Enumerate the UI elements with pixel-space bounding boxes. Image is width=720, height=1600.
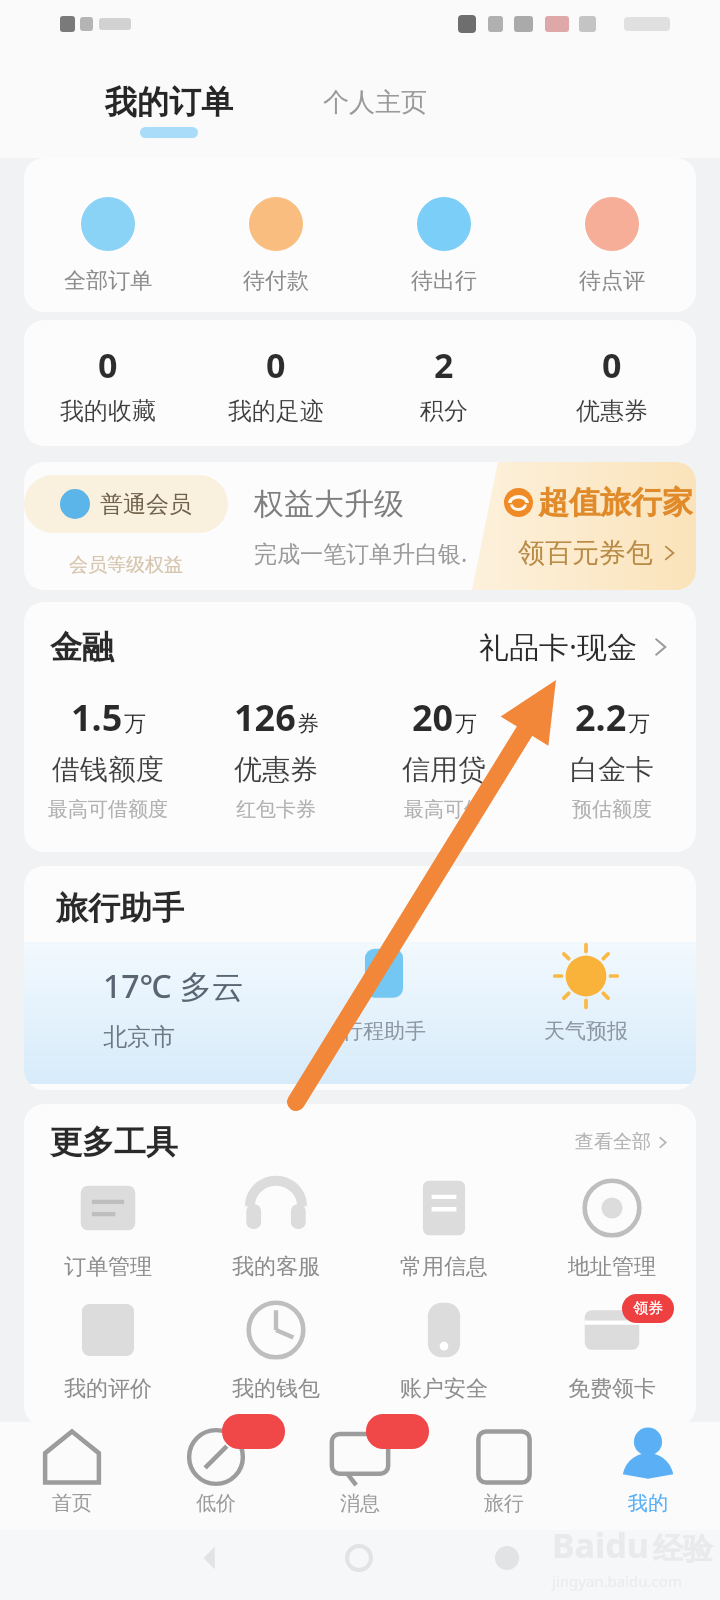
- button[interactable]: 我的钱包: [192, 1299, 360, 1403]
- staticText: 旅行助手: [56, 888, 184, 928]
- staticText: 首页: [52, 1491, 92, 1516]
- staticText: 我的评价: [64, 1375, 152, 1403]
- staticText: jingyan.baidu.com: [552, 1571, 682, 1591]
- staticText: Baidu: [552, 1522, 649, 1568]
- button[interactable]: 20: [360, 693, 528, 822]
- staticText: 领百元券包: [518, 536, 653, 570]
- staticText: 我的钱包: [232, 1375, 320, 1403]
- staticText: 优惠券: [576, 396, 648, 426]
- staticText: 旅行: [484, 1491, 524, 1516]
- staticText: 我的: [628, 1491, 668, 1516]
- staticText: 权益大升级: [254, 485, 404, 523]
- staticText: 礼品卡·现金: [479, 626, 638, 667]
- button[interactable]: 礼品卡·现金: [479, 626, 672, 667]
- button[interactable]: 个人主页: [323, 86, 427, 119]
- staticText: 经验: [653, 1530, 713, 1568]
- staticText: 行程助手: [342, 1018, 426, 1044]
- staticText: 0: [602, 342, 622, 388]
- staticText: 消息: [340, 1491, 380, 1516]
- button[interactable]: Back: [184, 1532, 236, 1584]
- button[interactable]: Home: [333, 1532, 385, 1584]
- button[interactable]: 账户安全: [360, 1299, 528, 1403]
- button[interactable]: 0: [24, 342, 192, 426]
- button[interactable]: 待点评: [528, 197, 696, 312]
- staticText: 信用贷: [402, 752, 486, 787]
- staticText: 天气预报: [544, 1018, 628, 1044]
- staticText: 万: [124, 710, 146, 738]
- staticText: 红包卡券: [236, 797, 316, 822]
- staticText: 待出行: [411, 267, 477, 295]
- staticText: 2: [434, 342, 454, 388]
- staticText: 积分: [420, 396, 468, 426]
- button[interactable]: 消息: [288, 1425, 432, 1530]
- button[interactable]: 旅行: [432, 1425, 576, 1530]
- staticText: 会员等级权益: [69, 553, 183, 577]
- staticText: 查看全部: [575, 1130, 651, 1154]
- staticText: 订单管理: [64, 1253, 152, 1281]
- staticText: 最高可借额度: [48, 797, 168, 822]
- staticText: 17℃ 多云: [103, 964, 244, 1008]
- button[interactable]: 常用信息: [360, 1177, 528, 1281]
- staticText: 账户安全: [400, 1375, 488, 1403]
- button[interactable]: 待出行: [360, 197, 528, 312]
- staticText: 常用信息: [400, 1253, 488, 1281]
- staticText: 20: [412, 693, 454, 742]
- button[interactable]: 我的: [576, 1425, 720, 1530]
- button[interactable]: 126: [192, 693, 360, 822]
- staticText: 待点评: [579, 267, 645, 295]
- staticText: 普通会员: [100, 490, 192, 519]
- button[interactable]: 0: [528, 342, 696, 426]
- staticText: 我的订单: [105, 82, 233, 122]
- staticText: 地址管理: [568, 1253, 656, 1281]
- button[interactable]: 我的评价: [24, 1299, 192, 1403]
- staticText: 我的收藏: [60, 396, 156, 426]
- button[interactable]: 我的订单: [105, 82, 233, 138]
- staticText: 预估额度: [572, 797, 652, 822]
- staticText: 领券: [633, 1299, 663, 1318]
- button[interactable]: 全部订单: [24, 197, 192, 312]
- staticText: 北京市: [103, 1022, 175, 1052]
- staticText: 完成一笔订单升白银…: [254, 537, 468, 568]
- staticText: 白金卡: [570, 752, 654, 787]
- staticText: 最高可借: [404, 797, 484, 822]
- button[interactable]: 查看全部: [575, 1130, 670, 1154]
- staticText: 超值旅行家: [538, 483, 693, 522]
- staticText: 万: [628, 710, 650, 738]
- button[interactable]: 领券: [528, 1299, 696, 1403]
- staticText: 待付款: [243, 267, 309, 295]
- staticText: 126: [234, 693, 296, 742]
- button[interactable]: 超值旅行家: [472, 462, 696, 590]
- staticText: 我的客服: [232, 1253, 320, 1281]
- button[interactable]: 行程助手: [314, 942, 454, 1044]
- staticText: 全部订单: [64, 267, 152, 295]
- staticText: 我的足迹: [228, 396, 324, 426]
- staticText: 优惠券: [234, 752, 318, 787]
- staticText: 低价: [196, 1491, 236, 1516]
- staticText: 借钱额度: [52, 752, 164, 787]
- staticText: 2.2: [575, 693, 627, 742]
- button[interactable]: 首页: [0, 1425, 144, 1530]
- staticText: 0: [98, 342, 118, 388]
- button[interactable]: 我的客服: [192, 1177, 360, 1281]
- button[interactable]: 1.5: [24, 693, 192, 822]
- button[interactable]: 普通会员: [24, 475, 228, 577]
- button[interactable]: 2: [360, 342, 528, 426]
- button[interactable]: 地址管理: [528, 1177, 696, 1281]
- button[interactable]: 低价: [144, 1425, 288, 1530]
- button[interactable]: 0: [192, 342, 360, 426]
- button[interactable]: Recents: [481, 1532, 533, 1584]
- button[interactable]: 2.2: [528, 693, 696, 822]
- staticText: 个人主页: [323, 86, 427, 119]
- staticText: 免费领卡: [568, 1375, 656, 1403]
- staticText: 券: [297, 710, 319, 738]
- button[interactable]: 17℃ 多云: [103, 964, 244, 1052]
- button[interactable]: 待付款: [192, 197, 360, 312]
- button[interactable]: 订单管理: [24, 1177, 192, 1281]
- staticText: 金融: [50, 627, 114, 667]
- button[interactable]: 天气预报: [516, 942, 656, 1044]
- staticText: 1.5: [71, 693, 123, 742]
- staticText: 万: [455, 710, 477, 738]
- staticText: 0: [266, 342, 286, 388]
- staticText: 更多工具: [50, 1122, 178, 1162]
